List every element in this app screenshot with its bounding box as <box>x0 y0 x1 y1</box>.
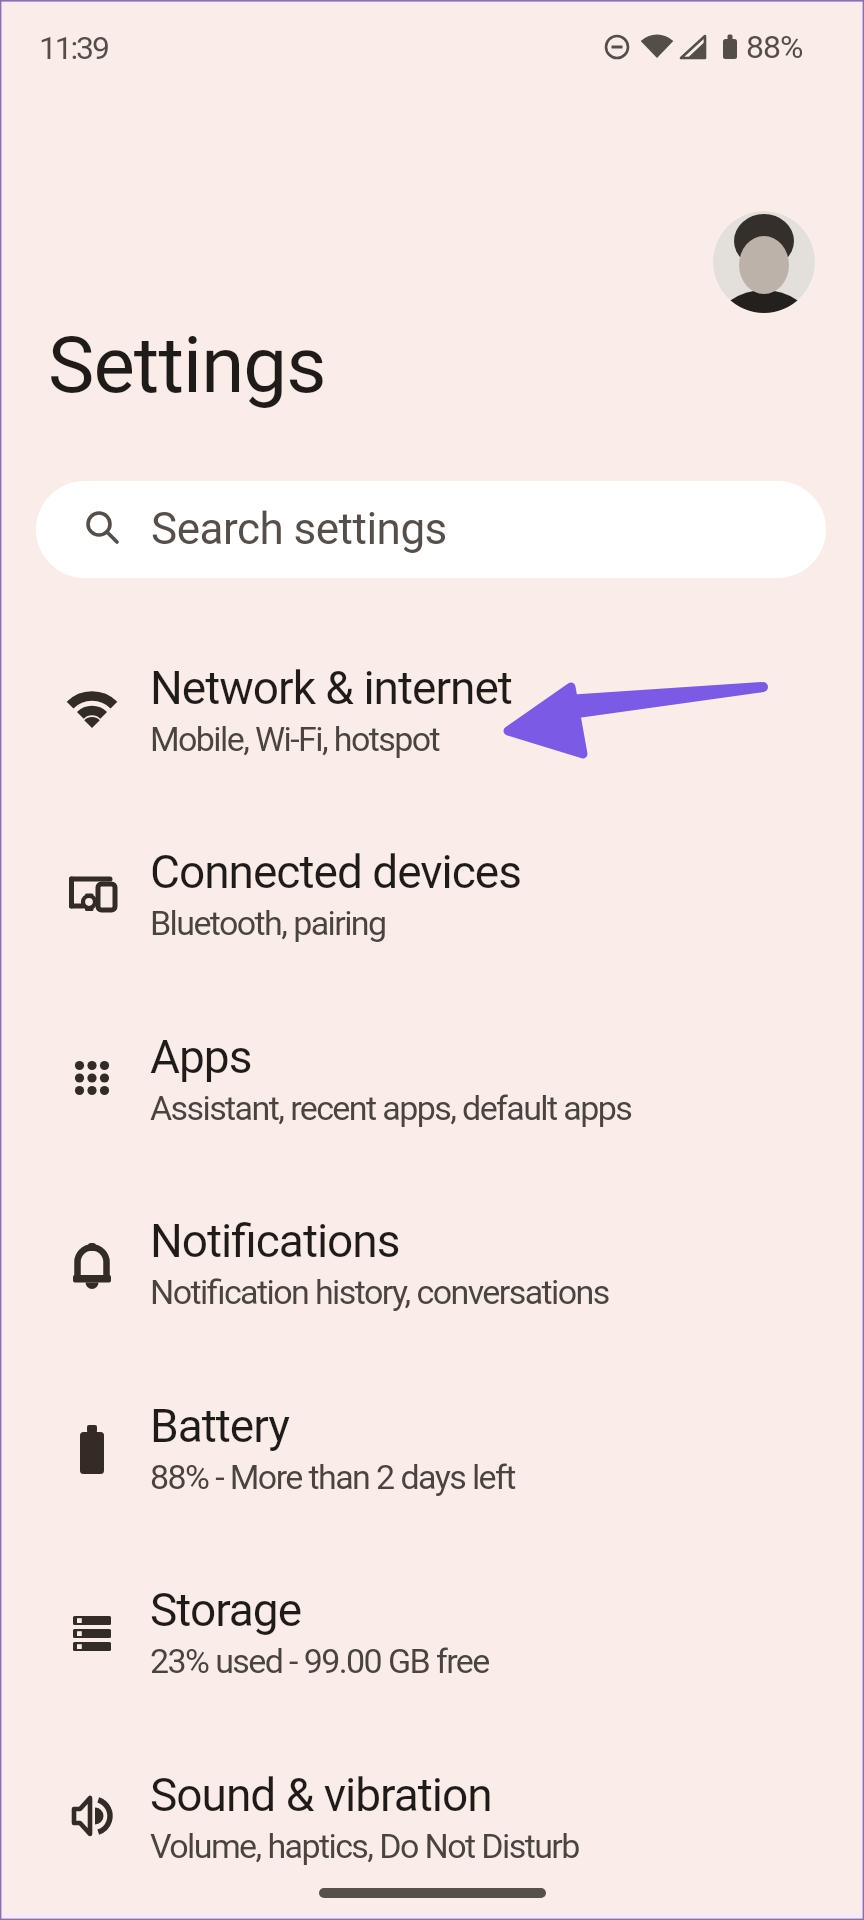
staticText: Volume, haptics, Do Not Disturb <box>150 1826 579 1866</box>
staticText: Notification history, conversations <box>150 1272 609 1312</box>
button[interactable] <box>0 1375 864 1559</box>
staticText: 88% <box>746 28 803 66</box>
staticText: Connected devices <box>150 845 521 899</box>
staticText: Battery <box>150 1399 289 1453</box>
button[interactable] <box>0 1006 864 1190</box>
button[interactable] <box>0 637 864 821</box>
staticText: Search settings <box>151 503 447 555</box>
button[interactable] <box>0 1744 864 1920</box>
button[interactable] <box>0 821 864 1005</box>
staticText: 88% - More than 2 days left <box>150 1457 515 1497</box>
staticText: Mobile, Wi-Fi, hotspot <box>150 719 440 759</box>
button[interactable] <box>36 481 826 578</box>
staticText: Storage <box>150 1583 302 1637</box>
staticText: 11:39 <box>39 29 108 67</box>
staticText: Settings <box>48 320 326 411</box>
button[interactable] <box>0 1190 864 1374</box>
staticText: Network & internet <box>150 661 512 715</box>
staticText: Bluetooth, pairing <box>150 903 386 943</box>
staticText: Sound & vibration <box>150 1768 492 1822</box>
staticText: Assistant, recent apps, default apps <box>150 1088 632 1128</box>
staticText: 23% used - 99.00 GB free <box>150 1641 489 1681</box>
button[interactable] <box>0 1559 864 1743</box>
button[interactable] <box>713 211 815 313</box>
staticText: Apps <box>150 1030 252 1084</box>
staticText: Notifications <box>150 1214 400 1268</box>
